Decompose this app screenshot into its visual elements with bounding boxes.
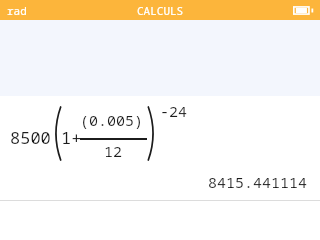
- button[interactable]: Battery: [291, 2, 315, 18]
- staticText: CALCULS: [137, 3, 184, 18]
- button[interactable]: 8500: [0, 96, 320, 200]
- staticText: -24: [160, 101, 188, 121]
- button[interactable]: rad: [0, 0, 34, 20]
- staticText: 1+: [61, 126, 82, 149]
- staticText: 8415.441114: [208, 172, 308, 192]
- staticText: 8500: [10, 126, 51, 149]
- staticText: rad: [7, 3, 27, 18]
- staticText: (0.005): [80, 110, 144, 130]
- staticText: 12: [104, 141, 123, 161]
